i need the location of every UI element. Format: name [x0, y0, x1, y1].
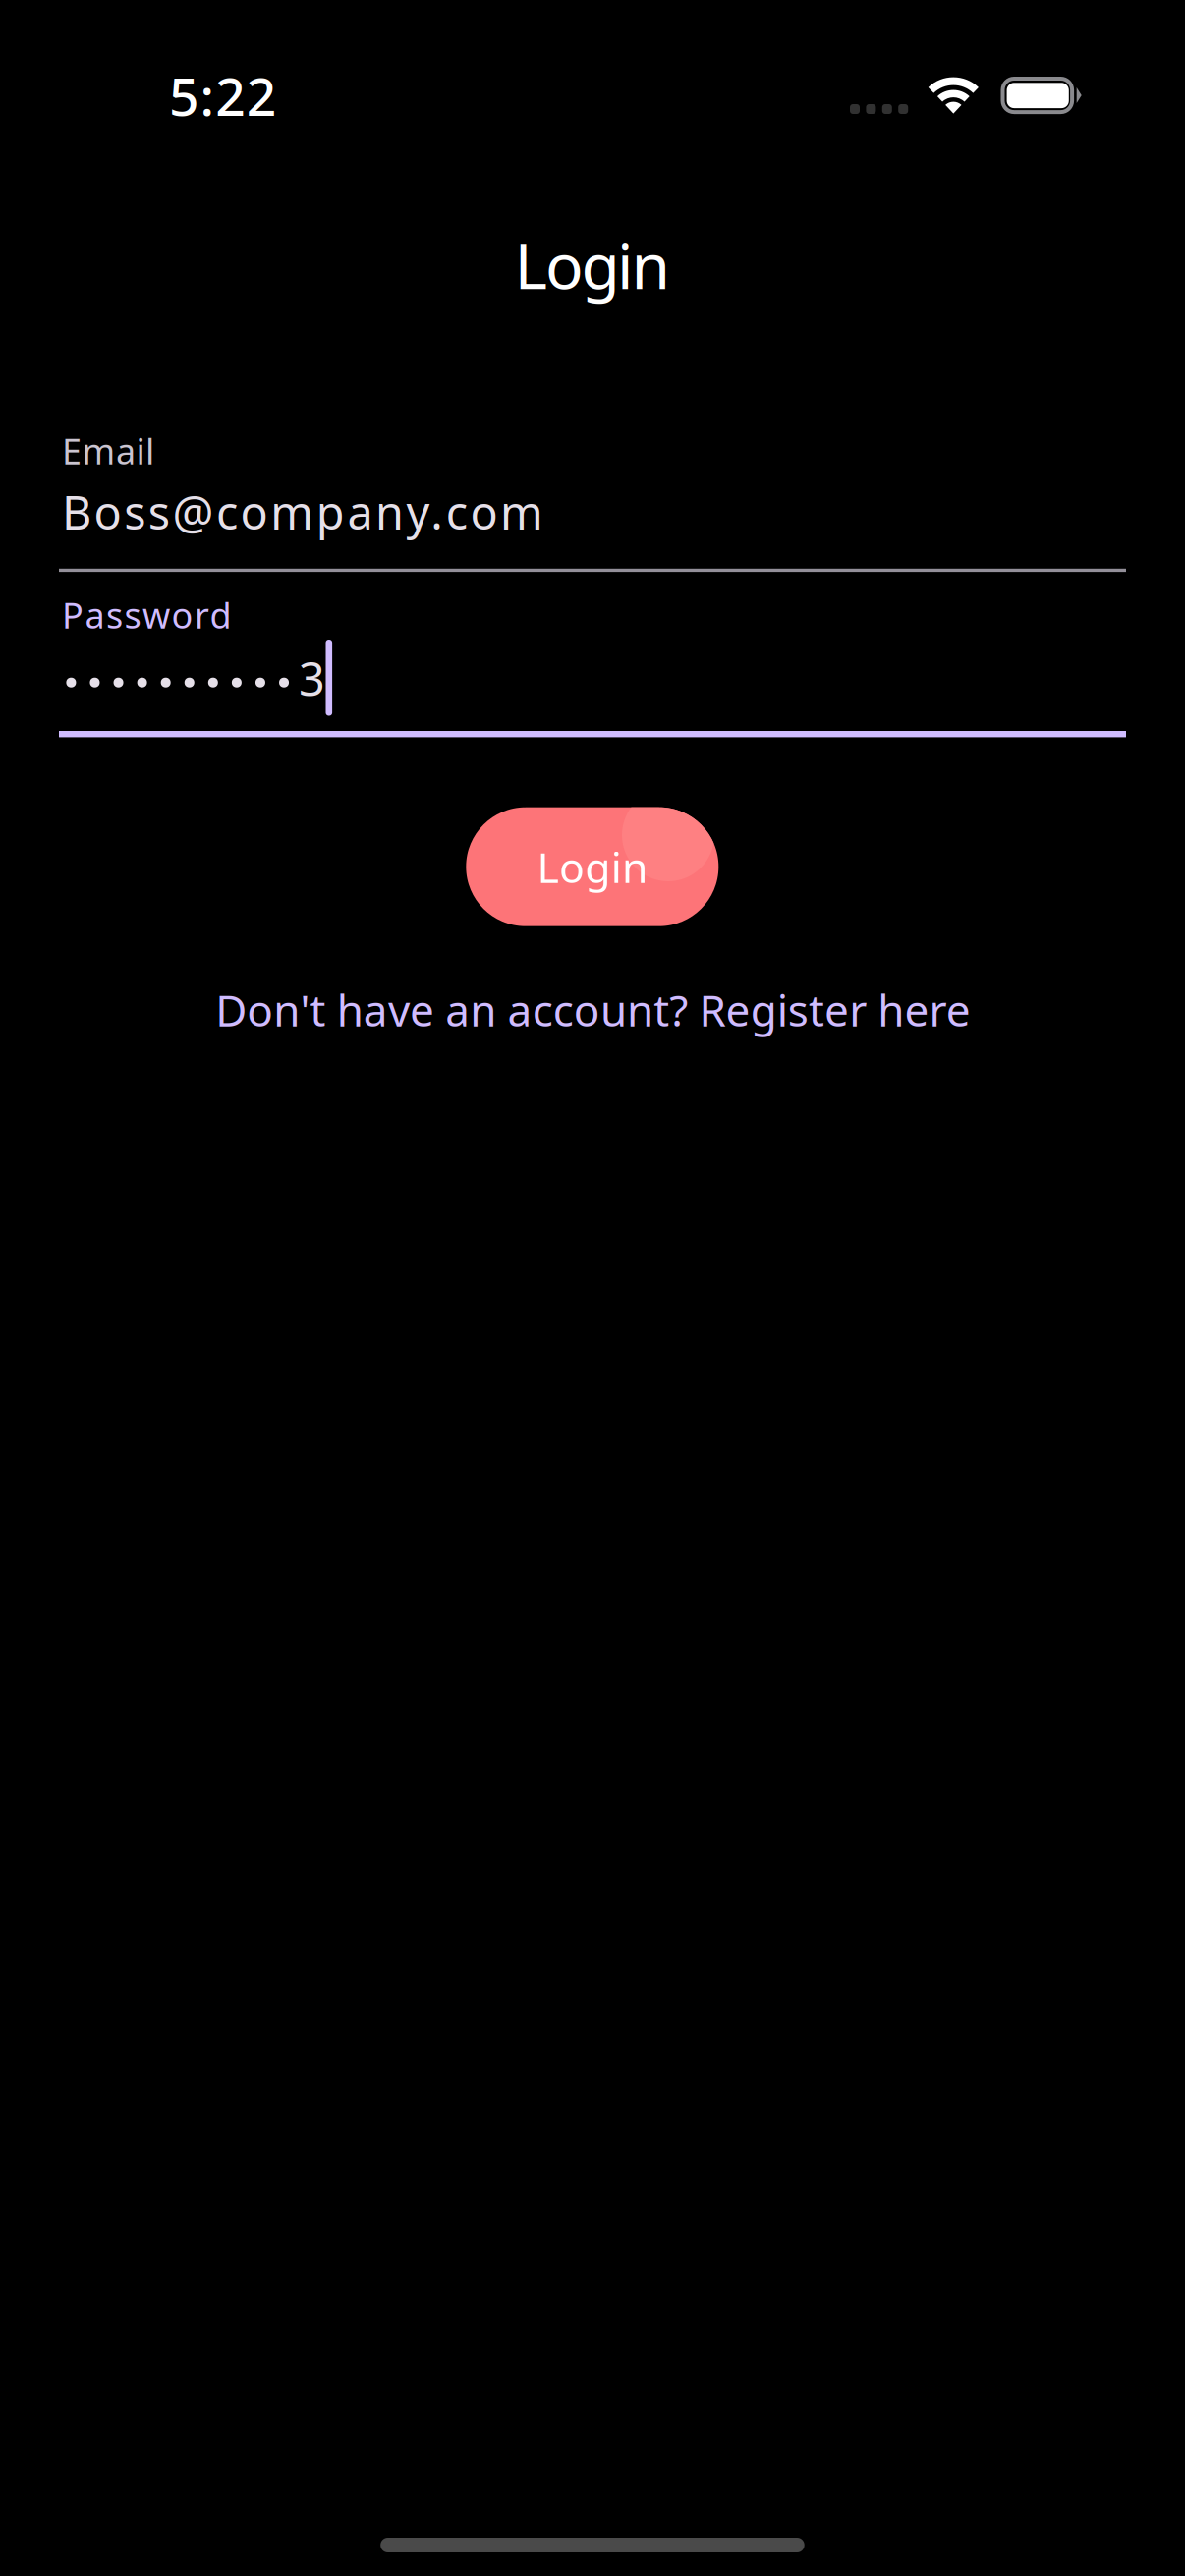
button[interactable]: Login — [466, 807, 719, 926]
staticText: 3 — [299, 648, 325, 697]
staticText: Login — [537, 839, 648, 895]
staticText: Login — [514, 223, 671, 302]
button[interactable]: Email — [59, 414, 1126, 575]
staticText: 5:22 — [169, 61, 277, 104]
staticText: Email — [62, 427, 154, 467]
button[interactable]: Password — [59, 571, 1126, 738]
staticText: Don't have an account? Register here — [215, 981, 971, 1038]
staticText: Boss@company.com — [62, 481, 543, 531]
staticText: Password — [62, 591, 231, 631]
button[interactable]: Don't have an account? Register here — [52, 978, 1133, 1041]
